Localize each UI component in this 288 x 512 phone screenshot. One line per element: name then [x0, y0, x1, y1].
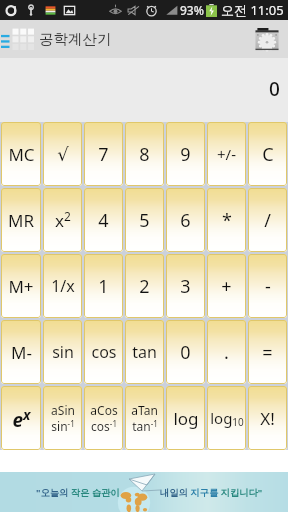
staticText: 내일의 지구를 지킵니다"	[160, 486, 263, 499]
staticText: MC	[8, 143, 35, 166]
button[interactable]: x2	[43, 188, 82, 252]
button[interactable]: 1	[84, 254, 123, 318]
staticText: cos-1	[91, 418, 117, 434]
button[interactable]: 0	[166, 320, 205, 384]
button[interactable]: 8	[125, 122, 164, 186]
staticText: 4	[98, 208, 109, 233]
staticText: M-	[11, 341, 32, 364]
button[interactable]: 3	[166, 254, 205, 318]
button[interactable]: √	[43, 122, 82, 186]
staticText: sin-1	[51, 418, 75, 434]
button[interactable]: ex	[1, 386, 41, 450]
staticText: 6	[180, 208, 191, 233]
staticText: /	[264, 208, 271, 233]
button[interactable]: Advertisement	[0, 472, 288, 512]
button[interactable]: aSin	[43, 386, 82, 450]
staticText: 1/x	[51, 275, 75, 297]
staticText: MR	[8, 209, 34, 232]
staticText: .	[224, 340, 229, 365]
button[interactable]: aTan	[125, 386, 164, 450]
button[interactable]: M+	[1, 254, 41, 318]
staticText: log	[173, 407, 199, 430]
staticText: 1	[98, 274, 109, 299]
button[interactable]: MC	[1, 122, 41, 186]
button[interactable]: cos	[84, 320, 123, 384]
staticText: +/-	[217, 144, 236, 164]
staticText: 0	[269, 76, 280, 102]
button[interactable]: 1/x	[43, 254, 82, 318]
staticText: aSin	[51, 402, 75, 418]
button[interactable]: MR	[1, 188, 41, 252]
button[interactable]: 7	[84, 122, 123, 186]
button[interactable]: 9	[166, 122, 205, 186]
button[interactable]: 5	[125, 188, 164, 252]
staticText: 8	[139, 142, 150, 167]
button[interactable]: .	[207, 320, 246, 384]
staticText: -	[265, 274, 271, 299]
button[interactable]: Settings	[246, 20, 288, 58]
button[interactable]: sin	[43, 320, 82, 384]
button[interactable]: -	[248, 254, 287, 318]
button[interactable]: log10	[207, 386, 246, 450]
button[interactable]: log	[166, 386, 205, 450]
button[interactable]: 6	[166, 188, 205, 252]
button[interactable]: 2	[125, 254, 164, 318]
staticText: 2	[139, 274, 150, 299]
button[interactable]: *	[207, 188, 246, 252]
button[interactable]: 4	[84, 188, 123, 252]
staticText: 오전 11:05	[221, 1, 284, 19]
button[interactable]: +	[207, 254, 246, 318]
staticText: =	[262, 340, 273, 365]
staticText: M+	[8, 275, 34, 298]
staticText: 3	[180, 274, 191, 299]
staticText: √	[57, 144, 69, 165]
staticText: 0	[180, 340, 191, 365]
button[interactable]: tan	[125, 320, 164, 384]
button[interactable]: /	[248, 188, 287, 252]
staticText: aTan	[131, 402, 158, 418]
button[interactable]: +/-	[207, 122, 246, 186]
button[interactable]: C	[248, 122, 287, 186]
staticText: tan	[132, 341, 157, 363]
staticText: aCos	[90, 402, 118, 418]
staticText: *	[222, 208, 232, 233]
staticText: 5	[139, 208, 150, 233]
button[interactable]: X!	[248, 386, 287, 450]
staticText: cos	[91, 341, 117, 363]
staticText: log10	[210, 408, 244, 429]
staticText: C	[262, 142, 274, 167]
staticText: 9	[180, 142, 191, 167]
staticText: x2	[55, 208, 71, 232]
staticText: 7	[98, 142, 109, 167]
staticText: ex	[12, 405, 31, 432]
button[interactable]: M-	[1, 320, 41, 384]
button[interactable]: =	[248, 320, 287, 384]
staticText: "오늘의 작은 습관이	[36, 486, 120, 499]
staticText: +	[221, 274, 232, 299]
staticText: sin	[52, 341, 74, 363]
button[interactable]: aCos	[84, 386, 123, 450]
staticText: tan-1	[132, 418, 158, 434]
staticText: 공학계산기	[39, 30, 112, 48]
staticText: X!	[260, 407, 275, 430]
staticText: 93%	[180, 2, 204, 18]
